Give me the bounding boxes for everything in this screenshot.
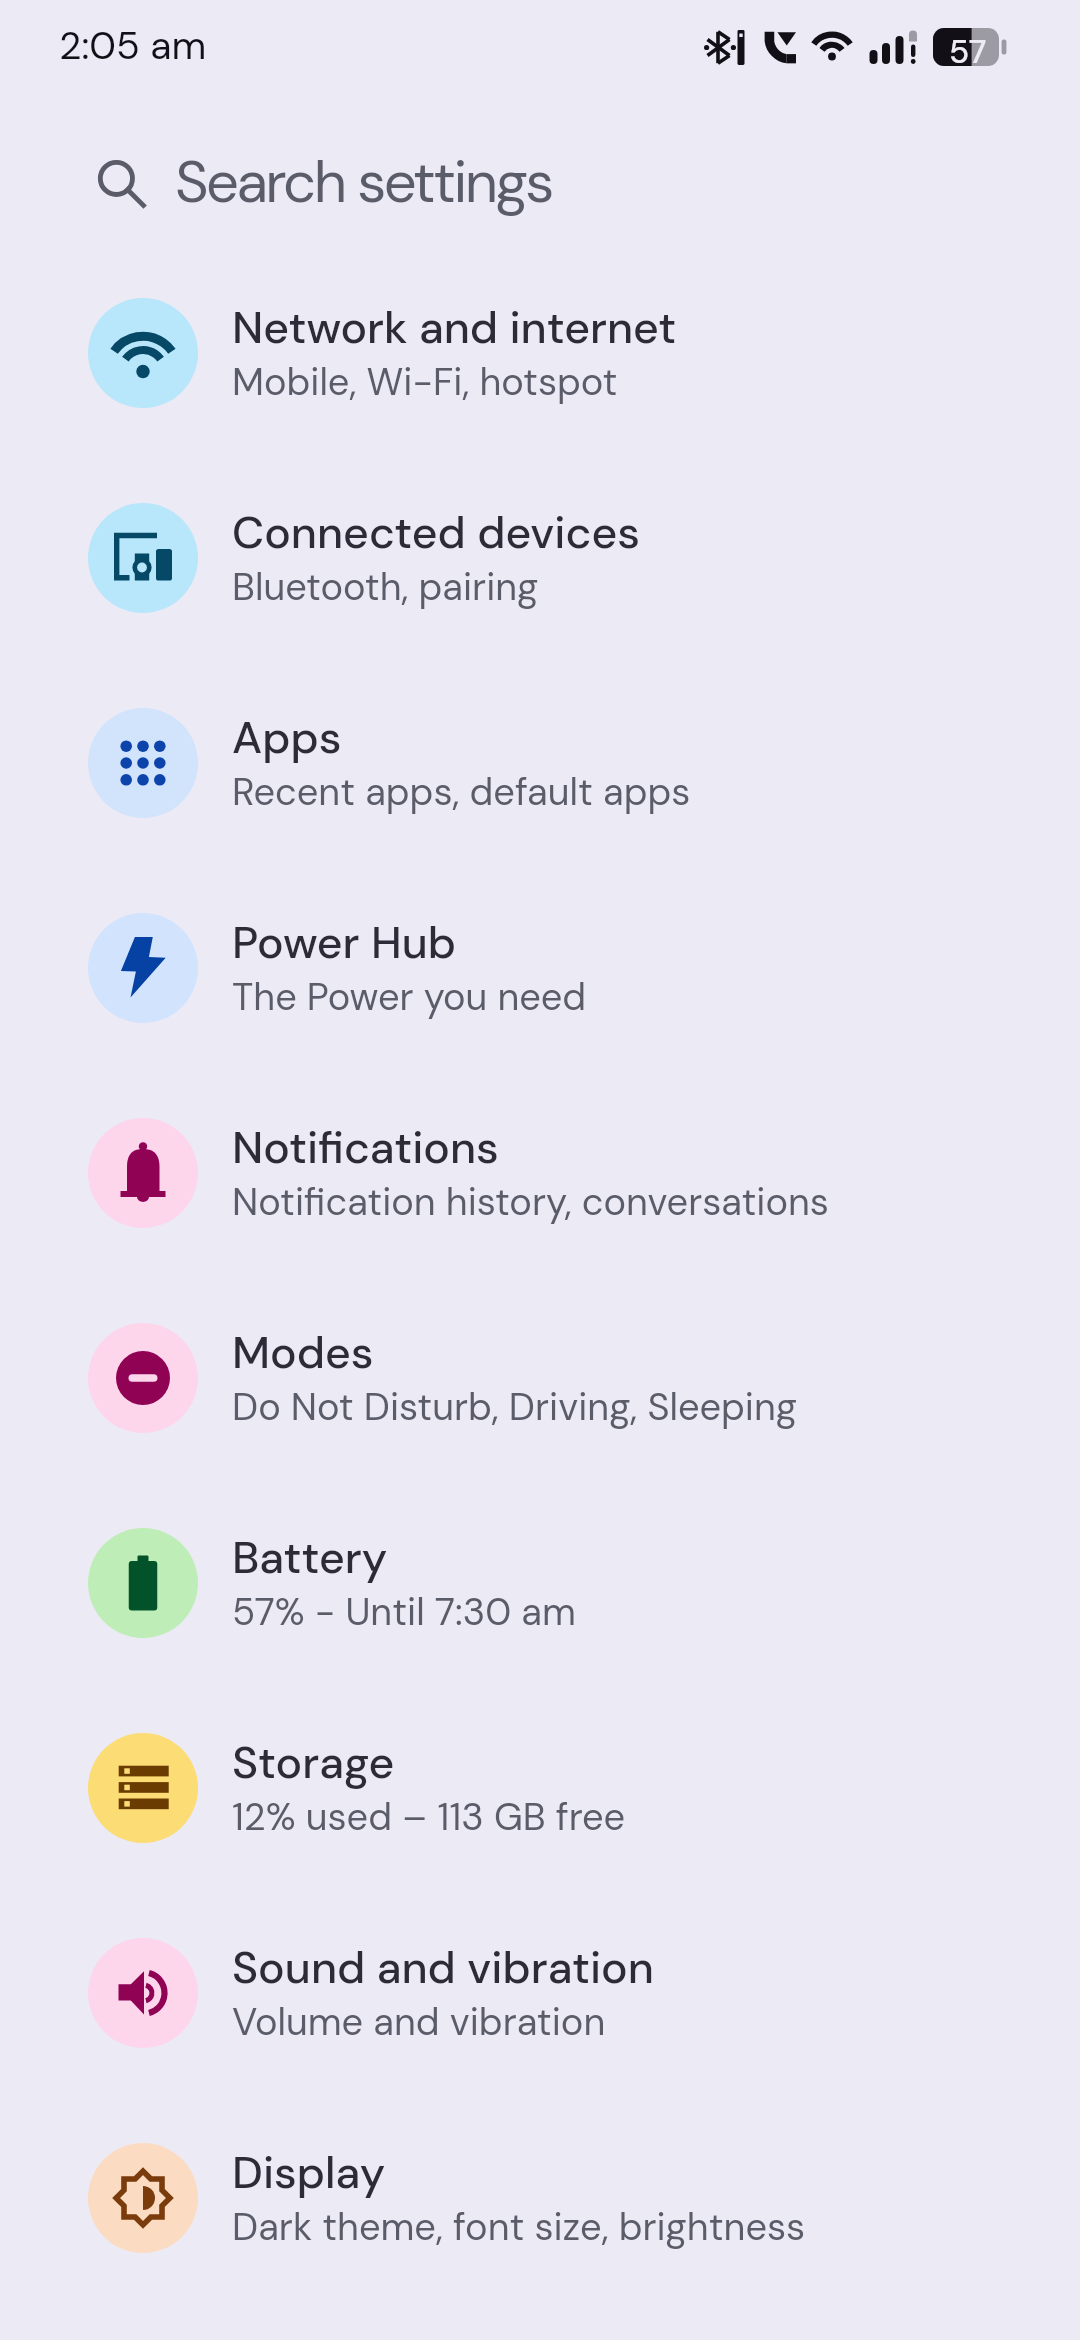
button[interactable]: Apps <box>0 660 1080 865</box>
button[interactable]: Connected devices <box>0 455 1080 660</box>
staticText: Display <box>232 2144 386 2202</box>
staticText: Apps <box>232 709 342 767</box>
button[interactable]: Power Hub <box>0 865 1080 1070</box>
staticText: 12% used – 113 GB free <box>232 1792 626 1841</box>
button[interactable]: Network and internet <box>0 250 1080 455</box>
button[interactable]: Battery <box>0 1480 1080 1685</box>
staticText: Dark theme, font size, brightness <box>232 2202 806 2251</box>
staticText: Bluetooth, pairing <box>232 562 539 611</box>
staticText: Sound and vibration <box>232 1939 654 1997</box>
staticText: Do Not Disturb, Driving, Sleeping <box>232 1382 797 1431</box>
staticText: Volume and vibration <box>232 1997 606 2046</box>
staticText: 57 <box>949 30 987 68</box>
button[interactable]: Notifications <box>0 1070 1080 1275</box>
staticText: Power Hub <box>232 914 457 972</box>
button[interactable]: Storage <box>0 1685 1080 1890</box>
staticText: Storage <box>232 1734 395 1792</box>
staticText: Mobile, Wi-Fi, hotspot <box>232 357 618 406</box>
staticText: Recent apps, default apps <box>232 767 691 816</box>
staticText: Search settings <box>175 144 552 220</box>
staticText: 57% - Until 7:30 am <box>232 1587 576 1636</box>
staticText: 2:05 am <box>59 20 207 71</box>
other: Search <box>96 158 147 209</box>
staticText: Notification history, conversations <box>232 1177 829 1226</box>
button[interactable]: Sound and vibration <box>0 1890 1080 2095</box>
staticText: Notifications <box>232 1119 499 1177</box>
button[interactable]: Display <box>0 2095 1080 2300</box>
staticText: The Power you need <box>232 972 587 1021</box>
staticText: Connected devices <box>232 504 640 562</box>
staticText: Network and internet <box>232 299 677 357</box>
staticText: Battery <box>232 1529 388 1587</box>
staticText: Modes <box>232 1324 374 1382</box>
button[interactable]: Modes <box>0 1275 1080 1480</box>
button[interactable]: Search <box>0 94 1080 250</box>
